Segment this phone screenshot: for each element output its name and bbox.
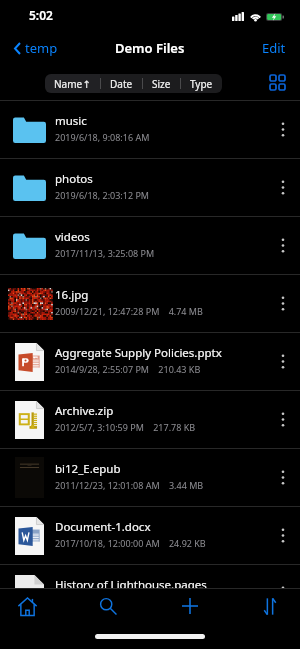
- staticText: 16.jpg: [55, 287, 89, 303]
- button[interactable]: More options: [266, 507, 300, 564]
- button[interactable]: More options: [266, 565, 300, 622]
- button[interactable]: More options: [266, 275, 300, 332]
- button[interactable]: Name↑: [45, 74, 100, 93]
- button[interactable]: music: [0, 100, 300, 158]
- staticText: Demo Files: [115, 39, 185, 57]
- button[interactable]: More options: [266, 449, 300, 506]
- staticText: videos: [55, 229, 90, 245]
- button[interactable]: Add: [168, 589, 212, 623]
- button[interactable]: History of Lighthouse.pages: [0, 564, 300, 622]
- button[interactable]: Home: [5, 589, 49, 623]
- staticText: 2011/12/23, 12:01:08 AM 3.44 MB: [55, 479, 204, 491]
- button[interactable]: 16.jpg: [0, 274, 300, 332]
- button[interactable]: Search: [86, 589, 130, 623]
- staticText: 2012/5/7, 3:10:59 PM 217.78 KB: [55, 421, 196, 433]
- staticText: photos: [55, 171, 93, 187]
- button[interactable]: Aggregate Supply Policies.pptx: [0, 332, 300, 390]
- button[interactable]: Archive.zip: [0, 390, 300, 448]
- button[interactable]: Type: [181, 74, 222, 93]
- staticText: Date: [110, 77, 133, 91]
- staticText: 2019/6/18, 9:08:16 AM: [55, 131, 150, 143]
- staticText: music: [55, 113, 87, 129]
- button[interactable]: temp: [0, 39, 66, 57]
- staticText: Type: [190, 77, 213, 91]
- button[interactable]: bi12_E.epub: [0, 448, 300, 506]
- staticText: bi12_E.epub: [55, 461, 121, 477]
- button[interactable]: Document-1.docx: [0, 506, 300, 564]
- staticText: Size: [152, 77, 171, 91]
- staticText: 2017/11/13, 3:25:08 PM: [55, 247, 155, 259]
- staticText: 5:02: [29, 7, 53, 23]
- staticText: 2009/12/21, 12:47:28 PM 4.74 MB: [55, 305, 203, 317]
- button[interactable]: Date: [101, 74, 142, 93]
- staticText: 2019/6/18, 2:03:12 PM: [55, 189, 149, 201]
- staticText: 2016/3/2, 9:12:44 AM 1.22 MB: [55, 595, 188, 607]
- button[interactable]: More options: [266, 333, 300, 390]
- button[interactable]: photos: [0, 158, 300, 216]
- button[interactable]: Sort: [248, 589, 292, 623]
- button[interactable]: More options: [266, 391, 300, 448]
- button[interactable]: Edit: [248, 39, 300, 57]
- staticText: 2014/9/28, 2:55:07 PM 210.43 KB: [55, 363, 201, 375]
- staticText: Name↑: [54, 77, 91, 91]
- staticText: Document-1.docx: [55, 519, 151, 535]
- button[interactable]: More options: [266, 159, 300, 216]
- staticText: Edit: [262, 39, 286, 57]
- staticText: 2017/10/18, 12:00:00 AM 24.92 KB: [55, 537, 206, 549]
- button[interactable]: videos: [0, 216, 300, 274]
- button[interactable]: Grid view: [270, 75, 285, 90]
- button[interactable]: Size: [143, 74, 180, 93]
- staticText: temp: [25, 39, 58, 57]
- button[interactable]: More options: [266, 217, 300, 274]
- staticText: History of Lighthouse.pages: [55, 577, 207, 593]
- staticText: Archive.zip: [55, 403, 114, 419]
- button[interactable]: More options: [266, 101, 300, 158]
- staticText: Aggregate Supply Policies.pptx: [55, 345, 222, 361]
